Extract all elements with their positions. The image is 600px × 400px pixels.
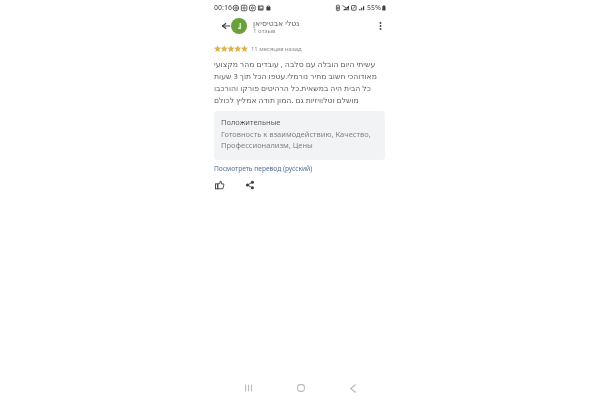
button[interactable]: Profile photo <box>231 18 247 34</box>
button[interactable]: More options <box>366 12 394 40</box>
button[interactable]: Back <box>345 380 361 396</box>
staticText: 11 месяцев назад <box>251 45 302 53</box>
staticText: Посмотреть перевод (русский) <box>214 164 313 173</box>
button[interactable]: Home <box>293 380 309 396</box>
staticText: 00:16 <box>214 3 232 13</box>
staticText: Положительные <box>221 117 281 127</box>
staticText: עשיתי היום הובלה עם סלבה , עובדים מהר מק… <box>214 59 385 106</box>
staticText: נטלי אבטיסיאן <box>253 18 300 28</box>
staticText: 55% <box>367 3 381 13</box>
button[interactable]: Посмотреть перевод (русский) <box>214 164 313 173</box>
staticText: 1 отзыв <box>253 26 276 34</box>
button[interactable]: Back <box>212 12 240 40</box>
staticText: Готовность к взаимодействию, Качество, П… <box>221 129 385 150</box>
button[interactable]: Recents <box>240 380 256 396</box>
button[interactable]: Like <box>208 174 230 196</box>
button[interactable]: Share <box>239 174 261 196</box>
